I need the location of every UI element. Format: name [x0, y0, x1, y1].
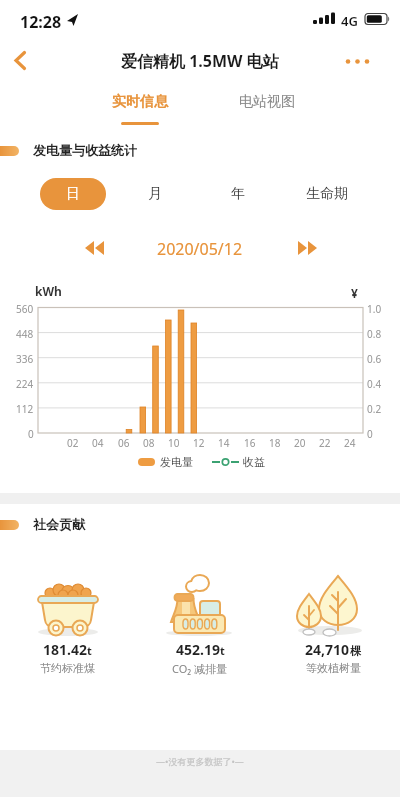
button[interactable]: 日 [40, 178, 106, 210]
button[interactable]: 月 [125, 178, 185, 210]
staticText: 月 [148, 185, 162, 203]
staticText: 10 [168, 436, 180, 448]
staticText: 24,710 [305, 640, 350, 659]
staticText: 爱信精机 1.5MW 电站 [121, 50, 279, 72]
button[interactable] [288, 236, 328, 260]
staticText: 12:28 [20, 11, 62, 33]
staticText: 发电量与收益统计 [33, 142, 137, 158]
staticText: 节约标准煤 [40, 661, 95, 675]
staticText: —•没有更多数据了•— [156, 755, 244, 767]
staticText: 日 [66, 185, 80, 203]
staticText: 2020/05/12 [157, 238, 243, 260]
staticText: 336 [16, 352, 34, 364]
staticText: 年 [231, 185, 245, 203]
staticText: 18 [269, 436, 281, 448]
staticText: 实时信息 [112, 93, 168, 111]
staticText: 08 [143, 436, 155, 448]
staticText: ¥ [351, 285, 358, 301]
staticText: 0.4 [367, 377, 382, 389]
button[interactable]: 2020/05/12 [0, 238, 400, 260]
staticText: 生命期 [306, 185, 348, 203]
staticText: 16 [244, 436, 256, 448]
staticText: 06 [118, 436, 130, 448]
button[interactable]: 实时信息 [95, 93, 185, 128]
staticText: 04 [92, 436, 104, 448]
staticText: 电站视图 [239, 93, 295, 111]
staticText: 0.2 [367, 402, 382, 414]
staticText: 452.19 [176, 640, 220, 659]
staticText: kWh [35, 283, 62, 299]
button[interactable] [338, 46, 382, 76]
staticText: 20 [294, 436, 306, 448]
staticText: 0.8 [367, 327, 382, 339]
staticText: 22 [319, 436, 331, 448]
staticText: 02 [67, 436, 79, 448]
staticText: 24 [344, 436, 356, 448]
button[interactable]: 生命期 [297, 178, 357, 210]
staticText: 0 [367, 427, 373, 439]
staticText: 1.0 [367, 302, 382, 314]
staticText: t [87, 643, 92, 658]
staticText: 224 [16, 377, 34, 389]
staticText: 448 [16, 327, 34, 339]
staticText: 社会贡献 [33, 516, 85, 532]
staticText: 14 [218, 436, 230, 448]
button[interactable]: 电站视图 [222, 93, 312, 128]
staticText: 收益 [243, 455, 265, 469]
staticText: 181.42 [43, 640, 87, 659]
staticText: 等效植树量 [306, 661, 361, 675]
staticText: 0.6 [367, 352, 382, 364]
staticText: 发电量 [160, 455, 193, 469]
button[interactable]: 年 [208, 178, 268, 210]
button[interactable] [4, 46, 44, 76]
staticText: CO₂ 减排量 [172, 661, 228, 676]
button[interactable] [75, 236, 115, 260]
staticText: 560 [16, 302, 34, 314]
staticText: t [220, 643, 225, 658]
staticText: 4G [341, 12, 358, 30]
staticText: 0 [28, 427, 34, 439]
staticText: 112 [16, 402, 34, 414]
staticText: 12 [193, 436, 205, 448]
staticText: 棵 [350, 644, 361, 658]
